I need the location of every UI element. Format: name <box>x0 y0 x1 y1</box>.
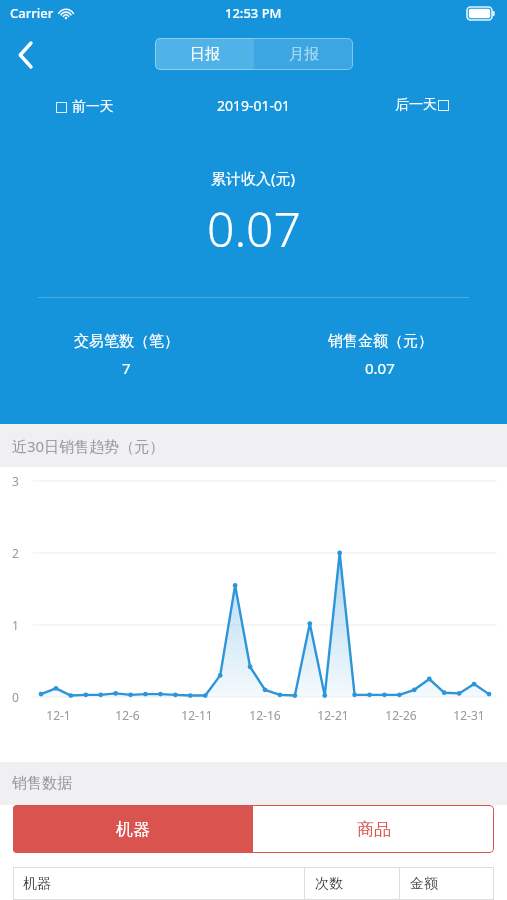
button[interactable]: □ 前一天 <box>0 90 169 120</box>
staticText: 12-16 <box>249 707 281 723</box>
staticText: 2 <box>12 545 19 561</box>
staticText: 12-6 <box>115 707 140 723</box>
button[interactable]: 月报 <box>254 38 353 70</box>
staticText: 商品 <box>357 819 391 840</box>
staticText: 12-26 <box>385 707 417 723</box>
staticText: 交易笔数（笔） <box>74 332 179 351</box>
button[interactable]: 日报 <box>155 38 254 70</box>
button[interactable]: 机器 <box>13 805 253 853</box>
staticText: 12-21 <box>317 707 349 723</box>
staticText: 机器 <box>23 875 51 893</box>
staticText: 近30日销售趋势（元） <box>12 436 165 456</box>
staticText: 销售金额（元） <box>328 332 433 351</box>
staticText: 0 <box>12 689 19 705</box>
staticText: 日报 <box>190 45 220 64</box>
staticText: 12-31 <box>453 707 485 723</box>
staticText: 3 <box>12 473 19 489</box>
staticText: 后一天□ <box>395 96 451 114</box>
staticText: 累计收入(元) <box>211 168 296 188</box>
button[interactable]: 交易笔数（笔） <box>0 332 253 378</box>
staticText: 0.07 <box>207 196 301 261</box>
button[interactable]: 销售金额（元） <box>253 332 507 378</box>
button[interactable]: Back <box>4 33 48 77</box>
staticText: 7 <box>122 358 131 378</box>
staticText: 12:53 PM <box>225 4 282 22</box>
staticText: 2019-01-01 <box>217 96 291 115</box>
staticText: 销售数据 <box>12 774 72 793</box>
staticText: 金额 <box>410 875 438 893</box>
staticText: Carrier <box>10 4 54 22</box>
button[interactable]: 商品 <box>253 805 494 853</box>
button[interactable]: 后一天□ <box>338 90 507 120</box>
staticText: □ 前一天 <box>55 96 114 115</box>
staticText: 0.07 <box>365 358 395 378</box>
staticText: 机器 <box>116 819 150 840</box>
staticText: 次数 <box>315 875 343 893</box>
staticText: 1 <box>12 617 19 633</box>
staticText: 12-1 <box>46 707 71 723</box>
staticText: 12-11 <box>181 707 213 723</box>
staticText: 月报 <box>289 45 319 64</box>
